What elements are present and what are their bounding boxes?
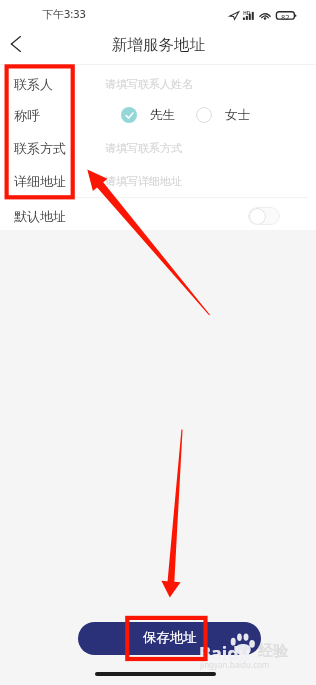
button[interactable]: Back xyxy=(2,30,30,58)
staticText: 经验 xyxy=(258,642,288,661)
staticText: 联系人 xyxy=(14,76,53,92)
button[interactable]: 联系人 xyxy=(0,68,316,100)
button[interactable]: 联系方式 xyxy=(0,132,316,164)
staticText: 请填写联系人姓名 xyxy=(105,77,193,91)
button[interactable]: 女士 xyxy=(196,107,250,123)
staticText: 请填写详细地址 xyxy=(105,174,182,188)
staticText: 联系方式 xyxy=(14,140,66,156)
staticText: jingyan.baidu.com xyxy=(200,659,270,670)
staticText: 82 xyxy=(281,12,290,22)
button[interactable]: 保存地址 xyxy=(78,622,261,655)
button[interactable]: 详细地址 xyxy=(0,165,316,197)
staticText: 默认地址 xyxy=(14,208,66,224)
button[interactable]: 先生 xyxy=(121,107,175,123)
button[interactable]: 称呼 xyxy=(0,99,316,131)
staticText: 保存地址 xyxy=(143,629,197,646)
staticText: 先生 xyxy=(150,107,175,123)
staticText: 新增服务地址 xyxy=(112,35,205,55)
staticText: Baidu xyxy=(199,641,251,666)
button[interactable] xyxy=(248,207,280,225)
staticText: 称呼 xyxy=(14,107,40,123)
staticText: 详细地址 xyxy=(14,173,66,189)
button[interactable]: 默认地址 xyxy=(0,200,316,232)
staticText: 下午3:33 xyxy=(42,6,86,21)
staticText: 女士 xyxy=(225,107,250,123)
staticText: 请填写联系方式 xyxy=(105,141,182,155)
staticText: HD xyxy=(243,10,251,17)
